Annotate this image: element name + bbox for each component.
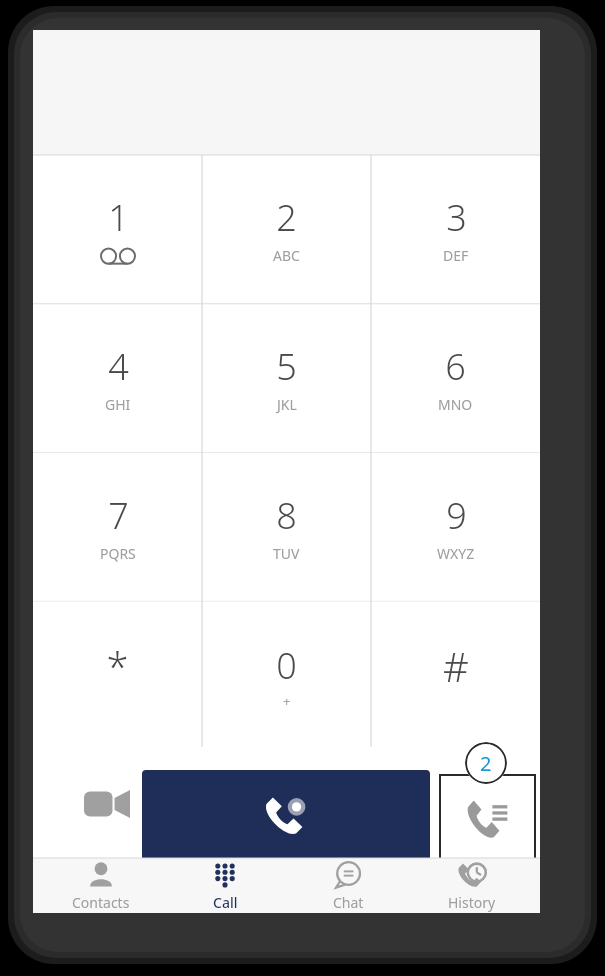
button[interactable]: History	[417, 858, 527, 913]
staticText: 1	[108, 193, 129, 242]
staticText: MNO	[438, 395, 473, 414]
button[interactable]: 6	[371, 303, 540, 452]
staticText: GHI	[105, 395, 131, 414]
staticText: DEF	[443, 246, 469, 265]
staticText: Chat	[333, 893, 364, 912]
button[interactable]: Call log	[440, 775, 535, 865]
button[interactable]: 9	[371, 452, 540, 601]
button[interactable]: 4	[33, 303, 202, 452]
staticText: 5	[276, 342, 297, 391]
staticText: 6	[445, 342, 466, 391]
staticText: TUV	[273, 544, 300, 563]
button[interactable]: 1	[33, 155, 202, 303]
button[interactable]: Contacts	[46, 858, 156, 913]
button[interactable]: 0	[202, 601, 371, 750]
staticText: 4	[108, 342, 129, 391]
staticText: JKL	[277, 395, 297, 414]
button[interactable]: *	[33, 601, 202, 750]
staticText: 0	[276, 641, 297, 690]
button[interactable]: 2	[202, 155, 371, 303]
staticText: 3	[446, 193, 467, 242]
button[interactable]: Call	[170, 858, 280, 913]
staticText: 8	[276, 491, 297, 540]
button[interactable]: Chat	[293, 858, 403, 913]
staticText: History	[448, 893, 496, 912]
staticText: 9	[446, 491, 467, 540]
staticText: Call	[213, 893, 238, 912]
button[interactable]: 3	[371, 155, 540, 303]
button[interactable]: 5	[202, 303, 371, 452]
button[interactable]: 7	[33, 452, 202, 601]
staticText: #	[443, 639, 469, 693]
button[interactable]: Video call	[78, 775, 136, 833]
staticText: ABC	[273, 246, 300, 265]
staticText: *	[106, 639, 129, 693]
staticText: Contacts	[72, 893, 130, 912]
staticText: PQRS	[100, 544, 136, 563]
staticText: 2	[480, 750, 492, 777]
button[interactable]: 8	[202, 452, 371, 601]
staticText: 7	[108, 491, 129, 540]
staticText: WXYZ	[437, 544, 475, 563]
button[interactable]: #	[371, 601, 540, 750]
staticText: 2	[276, 193, 297, 242]
staticText: +	[283, 692, 291, 710]
button[interactable]: Call	[142, 770, 430, 863]
